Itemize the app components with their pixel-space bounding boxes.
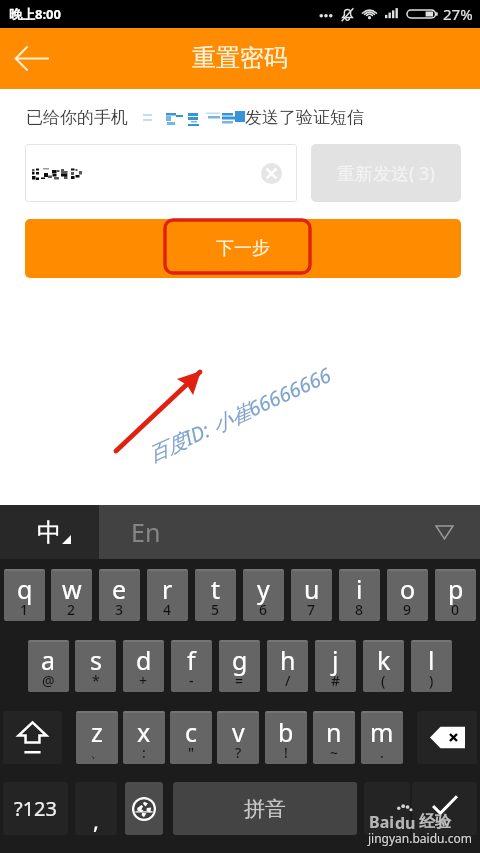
staticText: h — [280, 643, 296, 677]
staticText: m — [370, 715, 394, 749]
button[interactable]: En — [99, 505, 480, 559]
staticText: 5 — [211, 600, 220, 619]
button[interactable]: c — [170, 711, 212, 764]
staticText: z — [91, 715, 103, 749]
button[interactable]: i — [339, 569, 380, 621]
staticText: + — [139, 671, 148, 690]
button[interactable]: 中 — [0, 505, 99, 559]
staticText: 7 — [307, 600, 316, 619]
staticText: q — [17, 572, 33, 606]
staticText: l — [428, 643, 435, 677]
button[interactable]: Shift — [3, 711, 62, 764]
staticText: g — [232, 643, 248, 677]
staticText: 百度ID: 小崔66666666 — [143, 361, 336, 468]
button[interactable]: 下一步 — [25, 219, 461, 278]
button[interactable]: Emoji — [364, 782, 410, 835]
button[interactable]: a — [28, 640, 69, 692]
staticText: s — [90, 643, 102, 677]
staticText: " — [188, 743, 195, 762]
staticText: = — [235, 671, 244, 690]
button[interactable]: p — [435, 569, 476, 621]
staticText: @ — [42, 671, 55, 690]
button[interactable]: v — [217, 711, 259, 764]
button[interactable]: s — [75, 640, 116, 692]
staticText: v — [232, 715, 245, 749]
staticText: 重置密码 — [192, 43, 288, 73]
staticText: 2 — [67, 600, 76, 619]
button[interactable]: h — [267, 640, 308, 692]
button[interactable]: f — [171, 640, 212, 692]
staticText: . — [380, 743, 384, 762]
staticText: 晚上8:00 — [9, 5, 61, 23]
button[interactable]: b — [265, 711, 307, 764]
staticText: r — [162, 572, 173, 606]
staticText: 8 — [355, 600, 364, 619]
staticText: ?123 — [14, 795, 57, 822]
button[interactable]: Clear — [25, 144, 297, 202]
staticText: 1 — [20, 600, 29, 619]
button[interactable]: Back — [0, 28, 62, 89]
button[interactable]: g — [219, 640, 260, 692]
staticText: 0 — [451, 600, 460, 619]
staticText: t — [211, 572, 221, 606]
staticText: 27% — [443, 4, 473, 24]
button[interactable]: m — [361, 711, 403, 764]
button[interactable]: y — [243, 569, 284, 621]
staticText: a — [41, 643, 56, 677]
button[interactable]: j — [315, 640, 356, 692]
staticText: ! — [284, 743, 288, 762]
staticText: w — [62, 572, 82, 606]
button[interactable]: Enter — [412, 782, 477, 835]
staticText: n — [326, 715, 342, 749]
staticText: i — [356, 572, 363, 606]
button[interactable]: 重新发送( 3) — [311, 144, 461, 202]
staticText: * — [92, 671, 100, 690]
staticText: ( — [381, 671, 386, 690]
button[interactable]: x — [123, 711, 165, 764]
staticText: ? — [235, 743, 242, 762]
staticText: y — [257, 572, 270, 606]
button[interactable]: k — [363, 640, 404, 692]
button[interactable]: u — [291, 569, 332, 621]
staticText: du — [395, 812, 416, 834]
staticText: p — [448, 572, 464, 606]
staticText: En — [131, 515, 161, 549]
button[interactable]: ?123 — [3, 782, 68, 835]
staticText: 、 — [90, 744, 104, 762]
staticText: , — [93, 805, 99, 835]
staticText: 4 — [163, 600, 172, 619]
staticText: d — [136, 643, 152, 677]
staticText: - — [189, 671, 194, 690]
staticText: 6 — [259, 600, 268, 619]
button[interactable]: e — [99, 569, 140, 621]
button[interactable]: o — [387, 569, 428, 621]
staticText: ) — [429, 671, 434, 690]
staticText: o — [400, 572, 416, 606]
button[interactable]: t — [195, 569, 236, 621]
staticText: Bai — [369, 811, 395, 833]
staticText: j — [332, 643, 339, 677]
button[interactable]: r — [147, 569, 188, 621]
button[interactable]: , — [75, 782, 117, 835]
staticText: u — [304, 572, 320, 606]
button[interactable]: l — [411, 640, 452, 692]
staticText: 已给你的手机 — [26, 107, 128, 127]
button[interactable]: z — [76, 711, 118, 764]
button[interactable]: Backspace — [417, 711, 477, 764]
button[interactable]: w — [51, 569, 92, 621]
button[interactable]: Clear — [261, 163, 282, 184]
staticText: 下一步 — [216, 237, 270, 260]
staticText: x — [137, 715, 151, 749]
staticText: f — [187, 643, 196, 677]
staticText: 经验 — [419, 812, 451, 832]
button[interactable]: d — [123, 640, 164, 692]
button[interactable]: n — [313, 711, 355, 764]
button[interactable]: q — [4, 569, 45, 621]
staticText: 重新发送( 3) — [337, 161, 435, 186]
button[interactable]: 拼音 — [173, 782, 357, 835]
button[interactable]: Language — [125, 782, 163, 835]
staticText: 中 — [37, 517, 62, 548]
staticText: b — [278, 715, 294, 749]
staticText: 拼音 — [244, 796, 286, 822]
staticText: 3 — [115, 600, 124, 619]
